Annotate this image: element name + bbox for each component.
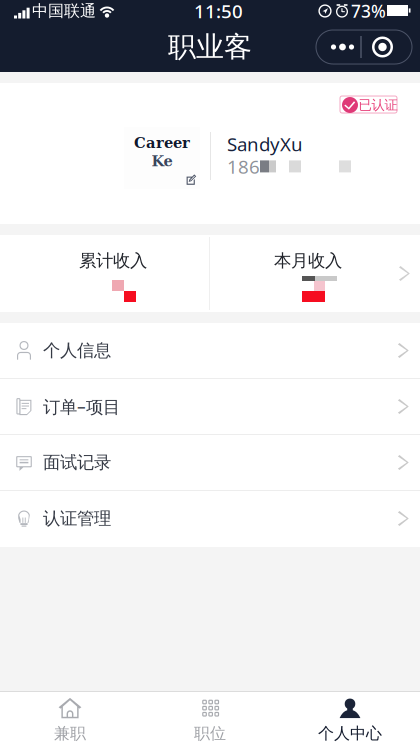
staticText: 兼职 <box>54 724 86 743</box>
staticText: 本月收入 <box>274 250 342 271</box>
button[interactable]: Mini program menu <box>316 30 412 64</box>
button[interactable]: 累计收入 <box>0 235 209 312</box>
staticText: Ke <box>151 152 172 170</box>
button[interactable]: 本月收入 <box>210 235 420 312</box>
staticText: Career <box>134 134 190 151</box>
button[interactable]: 个人信息 <box>0 323 420 379</box>
button[interactable]: 订单–项目 <box>0 379 420 435</box>
staticText: 个人信息 <box>43 340 111 361</box>
staticText: 已认证 <box>358 97 397 113</box>
staticText: 面试记录 <box>43 452 111 473</box>
staticText: 11:50 <box>194 0 243 23</box>
button[interactable]: Edit avatar <box>124 127 200 189</box>
staticText: 73% <box>351 0 386 22</box>
staticText: 认证管理 <box>43 508 111 529</box>
button[interactable]: 职位 <box>140 692 280 747</box>
staticText: SandyXu <box>227 132 303 156</box>
button[interactable]: 个人中心 <box>280 692 420 747</box>
staticText: 中国联通 <box>32 1 96 21</box>
staticText: 累计收入 <box>79 250 147 271</box>
button[interactable]: 兼职 <box>0 692 140 747</box>
staticText: 职业客 <box>168 30 252 64</box>
button[interactable]: 认证管理 <box>0 491 420 547</box>
staticText: 职位 <box>194 724 226 743</box>
staticText: 订单–项目 <box>43 395 120 418</box>
staticText: 186 <box>227 154 260 179</box>
button[interactable]: 面试记录 <box>0 435 420 491</box>
staticText: 个人中心 <box>318 724 382 743</box>
